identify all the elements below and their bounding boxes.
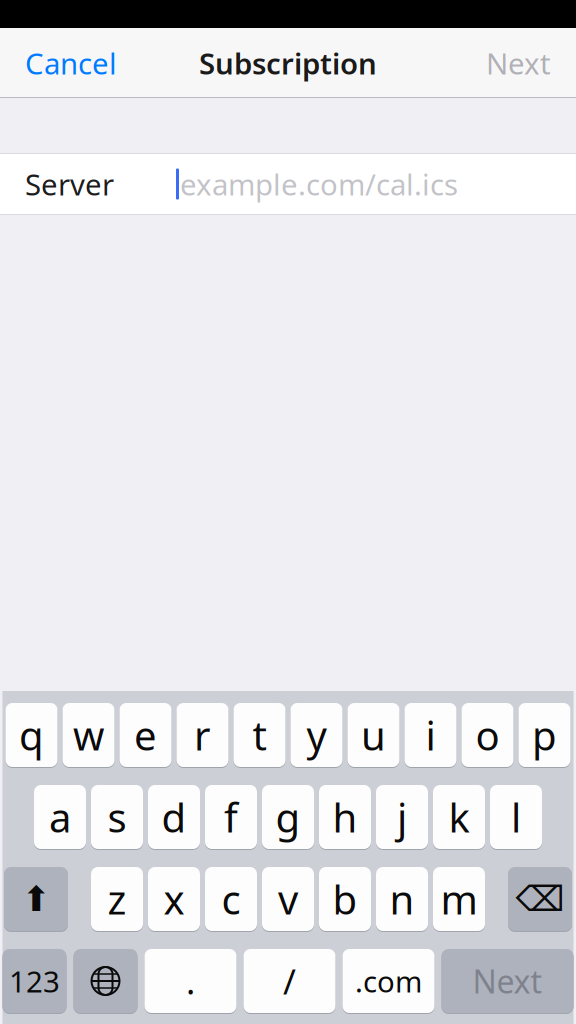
- button[interactable]: v: [262, 866, 314, 932]
- button[interactable]: .com: [342, 948, 434, 1014]
- button[interactable]: c: [205, 866, 257, 932]
- staticText: /: [283, 958, 296, 1004]
- staticText: r: [194, 708, 211, 761]
- button[interactable]: Shift: [4, 866, 68, 932]
- staticText: j: [397, 790, 407, 843]
- button[interactable]: Numbers: [2, 948, 66, 1014]
- staticText: w: [73, 708, 104, 761]
- button[interactable]: p: [518, 702, 570, 768]
- button[interactable]: a: [34, 784, 86, 850]
- button[interactable]: m: [433, 866, 485, 932]
- staticText: example.com/cal.ics: [180, 164, 458, 203]
- button[interactable]: g: [262, 784, 314, 850]
- staticText: v: [278, 872, 298, 925]
- button[interactable]: i: [404, 702, 456, 768]
- button[interactable]: r: [176, 702, 228, 768]
- staticText: n: [389, 872, 414, 925]
- staticText: b: [332, 872, 357, 925]
- staticText: u: [361, 708, 386, 761]
- staticText: Subscription: [199, 43, 377, 82]
- button[interactable]: j: [376, 784, 428, 850]
- staticText: i: [425, 708, 435, 761]
- staticText: Next: [472, 960, 542, 1002]
- staticText: ⬆: [21, 879, 50, 919]
- staticText: m: [440, 872, 477, 925]
- button[interactable]: /: [243, 948, 335, 1014]
- button[interactable]: d: [148, 784, 200, 850]
- staticText: .com: [355, 961, 422, 1000]
- button[interactable]: y: [290, 702, 342, 768]
- staticText: Server: [25, 164, 114, 203]
- staticText: q: [19, 708, 44, 761]
- button[interactable]: h: [319, 784, 371, 850]
- staticText: Next: [486, 43, 551, 82]
- button[interactable]: e: [119, 702, 171, 768]
- button[interactable]: t: [233, 702, 285, 768]
- button[interactable]: l: [490, 784, 542, 850]
- staticText: l: [511, 790, 521, 843]
- button[interactable]: f: [205, 784, 257, 850]
- button[interactable]: Next: [441, 948, 573, 1014]
- staticText: x: [163, 872, 184, 925]
- button[interactable]: o: [461, 702, 513, 768]
- staticText: s: [107, 790, 126, 843]
- staticText: h: [332, 790, 357, 843]
- button[interactable]: Cancel: [0, 28, 142, 98]
- staticText: ⌫: [515, 879, 564, 919]
- staticText: y: [306, 708, 326, 761]
- staticText: z: [107, 872, 126, 925]
- staticText: a: [49, 790, 71, 843]
- button[interactable]: u: [347, 702, 399, 768]
- staticText: e: [134, 708, 157, 761]
- staticText: k: [448, 790, 469, 843]
- button[interactable]: Next: [461, 28, 576, 98]
- button[interactable]: b: [319, 866, 371, 932]
- staticText: d: [161, 790, 186, 843]
- staticText: 123: [9, 961, 60, 1000]
- staticText: .: [186, 958, 195, 1004]
- button[interactable]: .: [144, 948, 236, 1014]
- button[interactable]: z: [91, 866, 143, 932]
- button[interactable]: k: [433, 784, 485, 850]
- button[interactable]: s: [91, 784, 143, 850]
- button[interactable]: w: [62, 702, 114, 768]
- staticText: o: [475, 708, 499, 761]
- button[interactable]: Server: [0, 153, 576, 215]
- button[interactable]: x: [148, 866, 200, 932]
- staticText: c: [221, 872, 240, 925]
- button[interactable]: Delete: [508, 866, 572, 932]
- button[interactable]: Next keyboard: [73, 948, 137, 1014]
- staticText: g: [275, 790, 300, 843]
- staticText: p: [532, 708, 557, 761]
- staticText: Cancel: [25, 43, 117, 82]
- staticText: t: [252, 708, 266, 761]
- button[interactable]: q: [5, 702, 57, 768]
- button[interactable]: n: [376, 866, 428, 932]
- staticText: f: [224, 790, 238, 843]
